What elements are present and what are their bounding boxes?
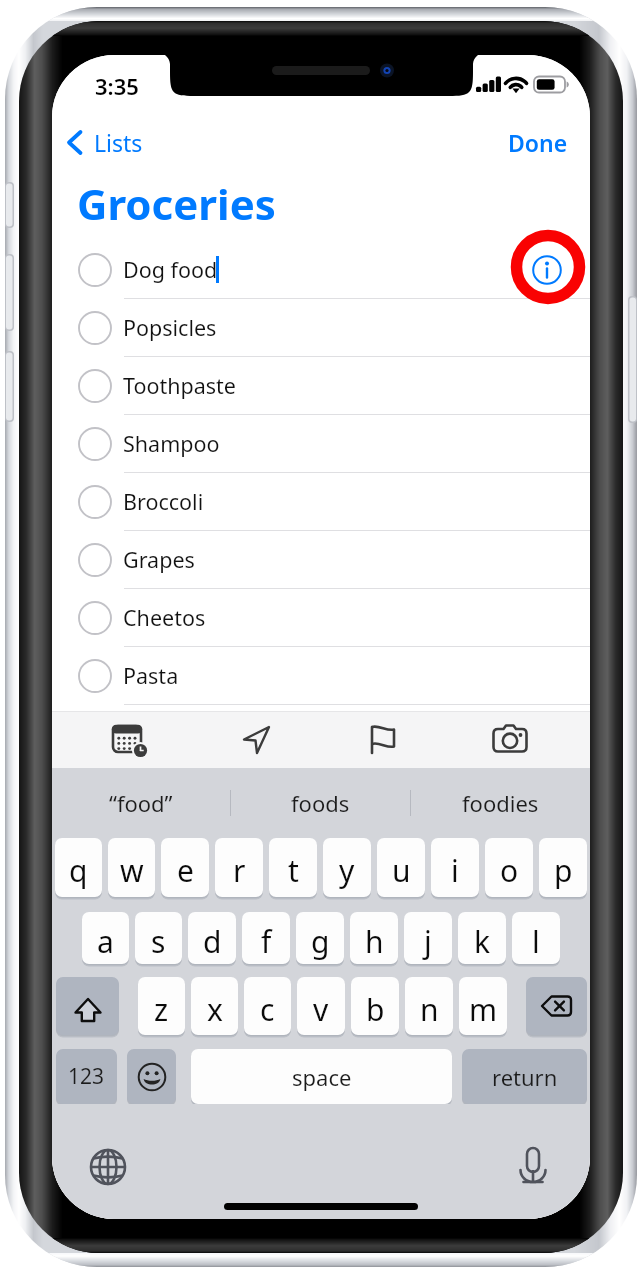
staticText: w bbox=[120, 850, 144, 891]
staticText: c bbox=[260, 989, 275, 1030]
button[interactable]: Location bbox=[226, 715, 286, 765]
staticText: foodies bbox=[462, 788, 539, 818]
button[interactable]: x bbox=[191, 977, 238, 1035]
button[interactable]: b bbox=[351, 977, 399, 1035]
staticText: “food” bbox=[109, 788, 173, 818]
button[interactable]: k bbox=[458, 912, 506, 964]
button[interactable]: s bbox=[135, 912, 182, 964]
button[interactable]: Broccoli bbox=[52, 473, 590, 531]
button[interactable]: d bbox=[188, 912, 236, 964]
button[interactable]: l bbox=[512, 912, 560, 964]
button[interactable]: Camera bbox=[480, 715, 540, 765]
staticText: b bbox=[366, 989, 385, 1030]
staticText: l bbox=[532, 921, 540, 962]
staticText: v bbox=[313, 989, 329, 1030]
staticText: s bbox=[151, 921, 166, 962]
button[interactable]: r bbox=[215, 838, 263, 897]
button[interactable]: Details bbox=[530, 253, 564, 287]
staticText: Popsicles bbox=[123, 313, 217, 342]
button[interactable]: y bbox=[323, 838, 371, 897]
staticText: u bbox=[392, 850, 411, 891]
staticText: n bbox=[420, 989, 439, 1030]
staticText: Shampoo bbox=[123, 429, 220, 458]
button[interactable]: foods bbox=[231, 768, 410, 838]
staticText: Lists bbox=[94, 127, 143, 158]
staticText: o bbox=[500, 850, 519, 891]
staticText: m bbox=[469, 989, 498, 1030]
button[interactable]: m bbox=[459, 977, 507, 1035]
button[interactable]: f bbox=[242, 912, 290, 964]
button[interactable]: o bbox=[485, 838, 533, 897]
button[interactable]: return bbox=[462, 1049, 587, 1104]
staticText: e bbox=[177, 850, 194, 891]
button[interactable]: Shift bbox=[56, 977, 119, 1035]
button[interactable]: Dog food bbox=[52, 241, 590, 299]
button[interactable]: z bbox=[138, 977, 185, 1035]
staticText: Groceries bbox=[77, 175, 276, 232]
staticText: q bbox=[69, 850, 88, 891]
staticText: 123 bbox=[68, 1062, 105, 1091]
staticText: return bbox=[492, 1062, 558, 1092]
button[interactable]: q bbox=[55, 838, 102, 897]
staticText: p bbox=[554, 850, 573, 891]
button[interactable]: n bbox=[405, 977, 453, 1035]
button[interactable]: Popsicles bbox=[52, 299, 590, 357]
staticText: Toothpaste bbox=[123, 371, 236, 400]
button[interactable]: 123 bbox=[56, 1049, 117, 1104]
button[interactable]: Grapes bbox=[52, 531, 590, 589]
staticText: x bbox=[207, 989, 223, 1030]
staticText: foods bbox=[291, 788, 350, 818]
button[interactable]: Change keyboard bbox=[84, 1143, 132, 1191]
button[interactable]: e bbox=[161, 838, 209, 897]
staticText: i bbox=[451, 850, 459, 891]
button[interactable]: space bbox=[191, 1049, 452, 1104]
staticText: a bbox=[97, 921, 114, 962]
staticText: d bbox=[203, 921, 222, 962]
button[interactable]: Pasta bbox=[52, 647, 590, 705]
staticText: h bbox=[365, 921, 384, 962]
button[interactable]: Toothpaste bbox=[52, 357, 590, 415]
staticText: f bbox=[261, 921, 272, 962]
staticText: r bbox=[233, 850, 246, 891]
staticText: Pasta bbox=[123, 661, 179, 690]
staticText: space bbox=[292, 1062, 352, 1092]
button[interactable]: v bbox=[297, 977, 345, 1035]
button[interactable]: h bbox=[350, 912, 398, 964]
button[interactable]: j bbox=[404, 912, 452, 964]
staticText: 3:35 bbox=[95, 71, 139, 101]
button[interactable]: Emoji bbox=[127, 1049, 176, 1104]
staticText: j bbox=[424, 921, 432, 962]
button[interactable]: “food” bbox=[52, 768, 230, 838]
staticText: Dog food bbox=[123, 255, 218, 284]
button[interactable]: Backspace bbox=[526, 977, 587, 1035]
button[interactable]: Shampoo bbox=[52, 415, 590, 473]
button[interactable]: Cheetos bbox=[52, 589, 590, 647]
button[interactable]: a bbox=[82, 912, 129, 964]
button[interactable]: u bbox=[377, 838, 425, 897]
button[interactable]: c bbox=[244, 977, 291, 1035]
staticText: t bbox=[288, 850, 299, 891]
staticText: Grapes bbox=[123, 545, 195, 574]
button[interactable]: w bbox=[108, 838, 155, 897]
button[interactable]: foodies bbox=[411, 768, 590, 838]
staticText: z bbox=[154, 989, 169, 1030]
button[interactable]: i bbox=[431, 838, 479, 897]
staticText: Done bbox=[508, 127, 568, 158]
staticText: Cheetos bbox=[123, 603, 206, 632]
button[interactable]: Flag bbox=[353, 715, 413, 765]
staticText: y bbox=[339, 850, 355, 891]
staticText: k bbox=[474, 921, 491, 962]
button[interactable]: Dictate bbox=[509, 1142, 557, 1190]
button[interactable]: Done bbox=[498, 119, 578, 166]
button[interactable]: Lists bbox=[59, 119, 151, 166]
button[interactable]: g bbox=[296, 912, 344, 964]
button[interactable]: Date bbox=[98, 715, 158, 765]
staticText: g bbox=[311, 921, 330, 962]
button[interactable]: p bbox=[539, 838, 587, 897]
staticText: Broccoli bbox=[123, 487, 204, 516]
button[interactable]: t bbox=[269, 838, 317, 897]
